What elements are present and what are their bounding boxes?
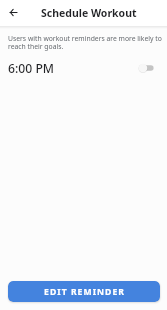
button[interactable]: 6:00 PM [0, 57, 167, 79]
button[interactable]: EDIT REMINDER [8, 281, 160, 302]
button[interactable]: Back [5, 4, 22, 21]
staticText: Users with workout reminders are more li… [8, 34, 166, 51]
button[interactable]: Reminder toggle [139, 62, 154, 74]
staticText: 6:00 PM [8, 60, 55, 77]
staticText: Schedule Workout [41, 6, 137, 20]
staticText: EDIT REMINDER [44, 286, 125, 298]
